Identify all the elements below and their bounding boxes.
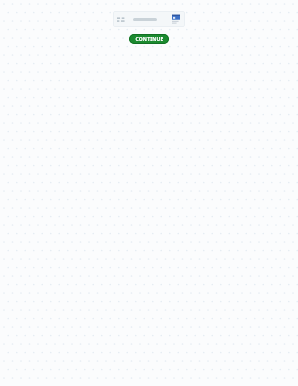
staticText: CONTINUE (135, 36, 164, 43)
button[interactable]: Preview thumbnail (113, 11, 185, 27)
button[interactable]: CONTINUE (129, 34, 169, 44)
other: Preview thumbnail (171, 14, 181, 25)
